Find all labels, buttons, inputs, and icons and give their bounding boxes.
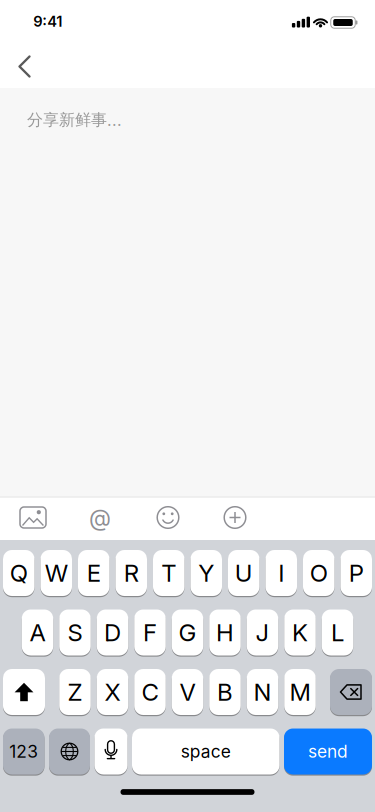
staticText: X xyxy=(104,678,120,706)
staticText: V xyxy=(179,678,195,706)
staticText: C xyxy=(141,678,158,706)
staticText: B xyxy=(217,678,233,706)
staticText: H xyxy=(216,618,234,647)
staticText: W xyxy=(45,559,68,587)
staticText: Z xyxy=(67,678,82,706)
staticText: space xyxy=(181,741,231,762)
staticText: E xyxy=(87,559,101,587)
staticText: 123 xyxy=(9,741,38,762)
staticText: 分享新鲜事... xyxy=(27,110,122,130)
staticText: M xyxy=(289,678,310,706)
staticText: 9:41 xyxy=(33,13,62,30)
staticText: S xyxy=(67,618,82,647)
staticText: L xyxy=(331,618,344,647)
staticText: F xyxy=(143,618,157,647)
staticText: G xyxy=(178,618,196,647)
staticText: I xyxy=(278,559,284,587)
staticText: O xyxy=(310,559,328,587)
staticText: Y xyxy=(198,559,214,587)
staticText: U xyxy=(235,559,253,587)
staticText: D xyxy=(104,618,121,647)
staticText: @ xyxy=(89,504,111,531)
staticText: T xyxy=(161,559,176,587)
staticText: K xyxy=(292,618,308,647)
staticText: R xyxy=(124,559,139,587)
staticText: P xyxy=(349,559,364,587)
staticText: send xyxy=(308,741,348,762)
staticText: Q xyxy=(10,559,28,587)
staticText: A xyxy=(29,618,45,647)
staticText: N xyxy=(253,678,271,706)
staticText: J xyxy=(255,618,269,647)
